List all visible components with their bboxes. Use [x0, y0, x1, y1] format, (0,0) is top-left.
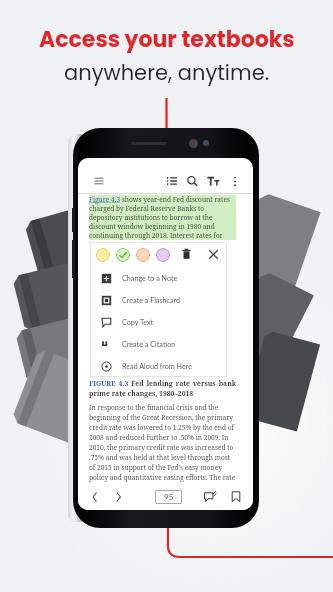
button[interactable]: Delete: [180, 248, 193, 261]
staticText: Copy Text: [122, 318, 154, 327]
button[interactable]: Change to a Note: [90, 267, 227, 289]
button[interactable]: Highlight colour: [96, 248, 110, 262]
button[interactable]: Search: [186, 175, 198, 187]
staticText: FIGURE 4.3 Fed lending rate versus bank …: [89, 379, 236, 398]
staticText: 95: [164, 492, 174, 502]
button[interactable]: Read Aloud from Here: [90, 355, 227, 377]
button[interactable]: Highlight colour: [116, 248, 130, 262]
button[interactable]: 95: [155, 490, 182, 504]
button[interactable]: Text settings: [207, 175, 220, 188]
button[interactable]: Close: [207, 248, 220, 261]
button[interactable]: Notes: [203, 490, 217, 504]
button[interactable]: Menu: [93, 175, 105, 187]
staticText: Change to a Note: [122, 274, 178, 283]
button[interactable]: Copy Text: [90, 311, 227, 333]
button[interactable]: Create a Citation: [90, 333, 227, 355]
button[interactable]: Table of contents: [166, 175, 178, 187]
staticText: Create a Citation: [122, 340, 176, 349]
staticText: In response to the financial crisis and …: [89, 403, 236, 484]
staticText: Read Aloud from Here: [122, 362, 193, 371]
staticText: anywhere, anytime.: [64, 58, 270, 87]
button[interactable]: Bookmark: [229, 490, 243, 504]
staticText: Figure 4.3 shows year-end Fed discount r…: [89, 195, 236, 240]
button[interactable]: Next page: [112, 490, 126, 504]
staticText: Access your textbooks: [39, 24, 295, 55]
button[interactable]: Previous page: [88, 490, 102, 504]
button[interactable]: Highlight colour: [136, 248, 150, 262]
button[interactable]: Create a Flashcard: [90, 289, 227, 311]
button[interactable]: Highlight colour: [156, 248, 170, 262]
staticText: Create a Flashcard: [122, 296, 181, 305]
button[interactable]: More options: [229, 175, 241, 187]
